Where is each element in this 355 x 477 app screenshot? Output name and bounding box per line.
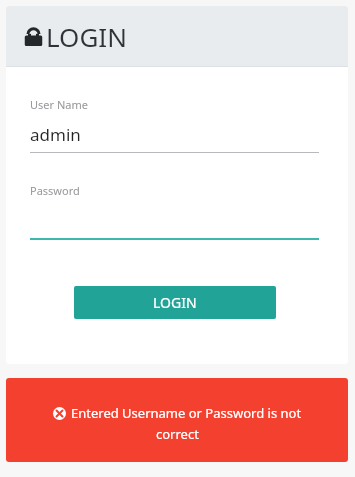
staticText: correct (156, 425, 199, 443)
staticText: User Name (30, 97, 88, 112)
button[interactable]: admin (30, 123, 319, 146)
staticText: Password (30, 183, 80, 198)
other: Lock (24, 25, 43, 49)
staticText: LOGIN (153, 293, 197, 312)
button[interactable]: LOGIN (74, 286, 276, 319)
other: Error (53, 407, 66, 420)
staticText: Entered Username or Password is not (71, 404, 302, 422)
button[interactable]: Error (6, 378, 348, 462)
staticText: admin (30, 123, 81, 146)
staticText: LOGIN (46, 19, 127, 54)
